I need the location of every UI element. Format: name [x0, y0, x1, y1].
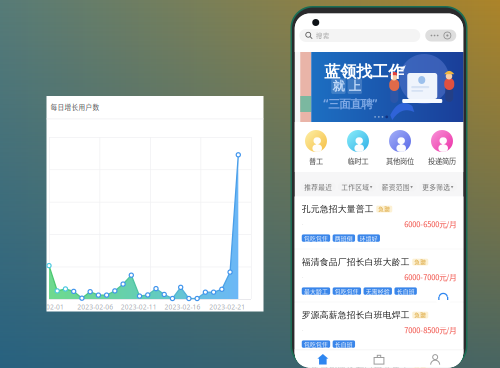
staticText: 临时工 — [347, 155, 368, 166]
staticText: ▾ — [410, 184, 413, 190]
button[interactable]: 临时工 — [337, 130, 379, 166]
staticText: · — [302, 326, 304, 334]
staticText: 工作区域 — [341, 182, 369, 192]
staticText: 环境好 — [360, 234, 378, 242]
staticText: 投递简历 — [428, 155, 456, 166]
staticText: 马尾急招数名长白班叉车工 — [302, 362, 410, 368]
button[interactable]: Home — [295, 353, 351, 366]
staticText: 2023-02-16 — [164, 302, 200, 311]
staticText: 2023-02-21 — [209, 302, 245, 311]
staticText: 急聘 — [414, 364, 426, 368]
staticText: 上 — [349, 78, 361, 94]
staticText: 每日增长用户数 — [50, 102, 99, 112]
button[interactable]: Customer service — [435, 288, 452, 305]
button[interactable]: Search — [299, 29, 420, 42]
staticText: 长白班 — [335, 340, 353, 348]
button[interactable]: 更多筛选 — [419, 182, 457, 191]
staticText: 2023-02-11 — [121, 302, 157, 311]
staticText: 就 — [332, 78, 344, 94]
button[interactable]: More options — [425, 29, 456, 41]
staticText: 包吃包住 — [335, 287, 359, 295]
staticText: ▾ — [370, 184, 373, 190]
staticText: 蓝领找工作 — [324, 61, 404, 82]
staticText: 急聘 — [414, 311, 426, 319]
staticText: 搜索 — [316, 31, 330, 40]
button[interactable]: 其他岗位 — [379, 130, 421, 166]
staticText: 福清食品厂招长白班大龄工 — [302, 256, 410, 268]
button[interactable]: Profile — [407, 353, 463, 366]
button[interactable]: 工作区域 — [338, 182, 376, 191]
button[interactable]: 薪资范围 — [378, 182, 417, 191]
staticText: 薪资范围 — [382, 182, 410, 192]
staticText: 无需经验 — [366, 287, 390, 295]
staticText: 长白班 — [397, 287, 415, 295]
staticText: 其他岗位 — [386, 155, 414, 166]
button[interactable]: Jobs — [351, 353, 407, 366]
staticText: · — [302, 220, 304, 228]
staticText: 包吃包住 — [304, 340, 328, 348]
staticText: · — [302, 273, 304, 281]
staticText: 两班倒 — [335, 234, 353, 242]
staticText: 孔元急招大量普工 — [302, 203, 374, 215]
staticText: 包吃包住 — [304, 234, 328, 242]
staticText: ▾ — [451, 184, 454, 190]
button[interactable]: 孔元急招大量普工 — [295, 196, 463, 249]
staticText: 更多筛选 — [422, 182, 450, 192]
button[interactable]: 投递简历 — [421, 130, 463, 166]
button[interactable]: 福清食品厂招长白班大龄工 — [295, 249, 463, 302]
staticText: 7000-8500元/月 — [404, 325, 456, 335]
staticText: 2023-02-06 — [77, 302, 113, 311]
staticText: “三面直聘” — [323, 96, 377, 112]
button[interactable]: 普工 — [295, 130, 337, 166]
staticText: 最大龄工 — [304, 287, 328, 295]
staticText: 推荐最近 — [304, 182, 332, 192]
staticText: 急聘 — [414, 258, 426, 266]
button[interactable]: 罗源高薪急招长白班电焊工 — [295, 302, 463, 355]
staticText: 6000-6500元/月 — [404, 219, 456, 229]
staticText: 普工 — [309, 155, 323, 166]
staticText: 急聘 — [378, 205, 390, 213]
button[interactable]: 推荐最近 — [301, 182, 336, 191]
staticText: 罗源高薪急招长白班电焊工 — [302, 309, 410, 321]
staticText: 6000-7000元/月 — [404, 272, 456, 282]
staticText: 02-01 — [46, 302, 64, 311]
button[interactable]: 马尾急招数名长白班叉车工 — [295, 355, 463, 368]
